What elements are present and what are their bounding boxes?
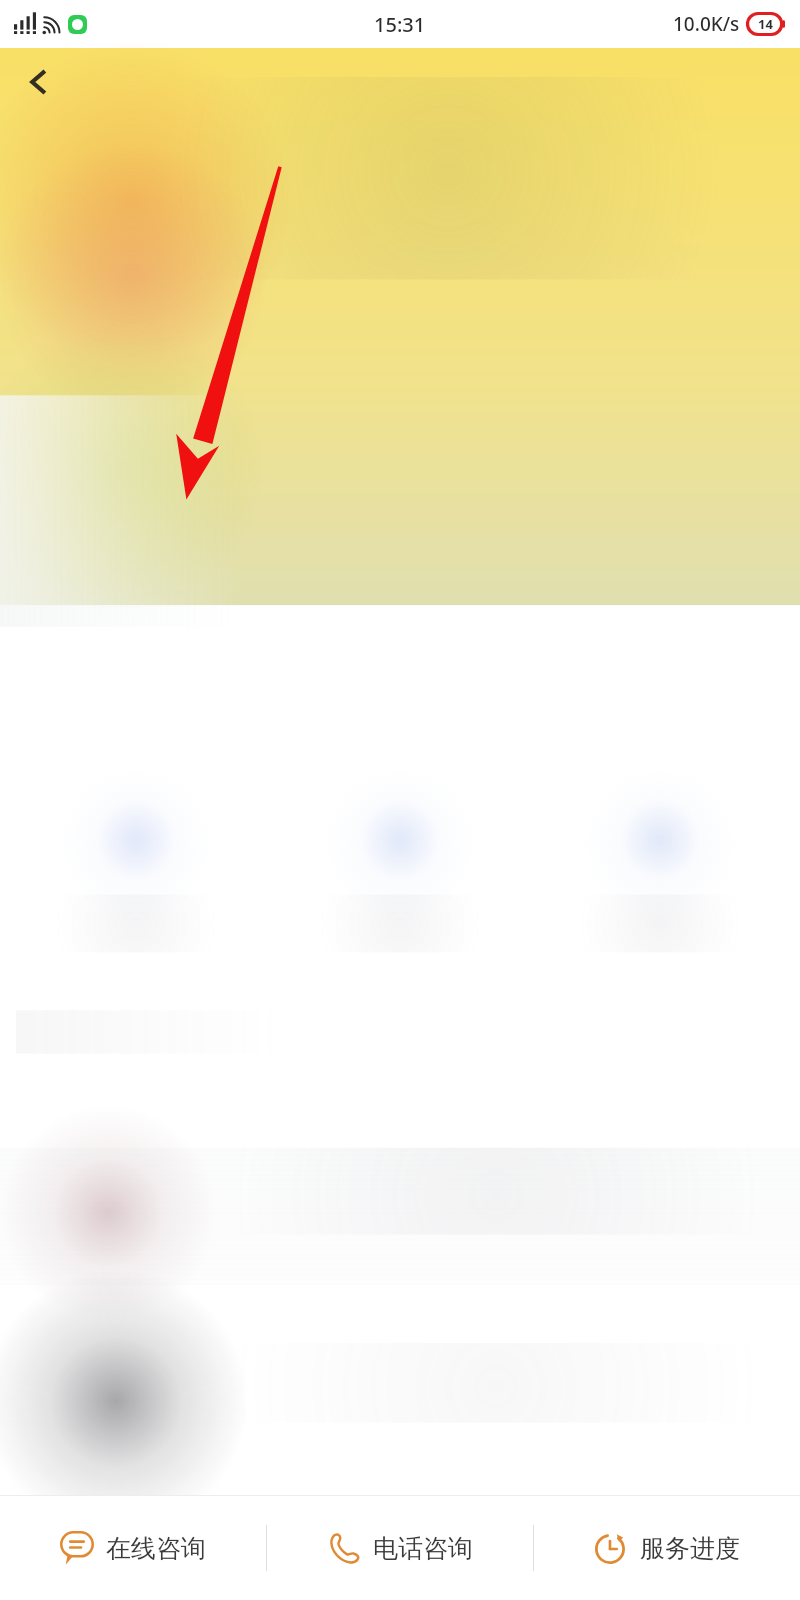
staticText: 电话咨询 bbox=[373, 1533, 473, 1564]
button[interactable]: Back bbox=[10, 54, 66, 110]
button[interactable]: 在线咨询 bbox=[0, 1496, 266, 1600]
staticText: 15:31 bbox=[374, 11, 426, 38]
button[interactable]: 服务进度 bbox=[534, 1496, 800, 1600]
button[interactable]: 电话咨询 bbox=[267, 1496, 533, 1600]
staticText: 14 bbox=[758, 15, 773, 33]
staticText: 在线咨询 bbox=[106, 1533, 206, 1564]
staticText: 服务进度 bbox=[640, 1533, 740, 1564]
staticText: 10.0K/s bbox=[673, 11, 740, 37]
